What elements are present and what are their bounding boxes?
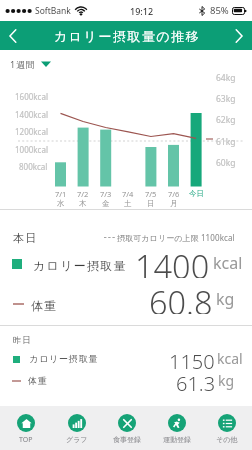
staticText: グラフ bbox=[66, 435, 88, 444]
staticText: 60kg bbox=[216, 157, 236, 169]
staticText: 摂取可カロリーの上限 1100kcal bbox=[117, 232, 235, 243]
staticText: 体重 bbox=[31, 298, 58, 313]
staticText: 本日 bbox=[13, 231, 38, 245]
staticText: 1150 bbox=[169, 348, 215, 370]
staticText: 金 bbox=[102, 199, 110, 208]
staticText: kg bbox=[218, 371, 235, 390]
staticText: 1600kcal bbox=[15, 91, 48, 102]
staticText: TOP bbox=[19, 435, 33, 445]
staticText: SoftBank bbox=[35, 5, 71, 17]
staticText: 7/4 bbox=[122, 189, 134, 199]
staticText: 運動登録 bbox=[163, 435, 191, 444]
staticText: 7/2 bbox=[77, 189, 89, 199]
staticText: 体重 bbox=[28, 375, 48, 386]
staticText: 1400 bbox=[135, 244, 210, 278]
staticText: 64kg bbox=[216, 72, 236, 84]
button[interactable]: TOP bbox=[0, 406, 51, 450]
staticText: 1000kcal bbox=[15, 144, 48, 155]
staticText: 1400kcal bbox=[15, 109, 48, 120]
staticText: 食事登録 bbox=[113, 435, 141, 444]
staticText: 今日 bbox=[189, 189, 204, 198]
staticText: 63kg bbox=[216, 93, 236, 105]
staticText: 1週間 bbox=[10, 58, 36, 70]
staticText: カロリー摂取量 bbox=[29, 353, 99, 364]
staticText: 85% bbox=[210, 4, 229, 17]
button[interactable]: 運動登録 bbox=[152, 406, 202, 450]
staticText: 月 bbox=[170, 199, 178, 208]
staticText: 19:12 bbox=[130, 5, 154, 17]
staticText: カロリー摂取量の推移 bbox=[54, 28, 201, 44]
staticText: 60.8 bbox=[149, 280, 213, 314]
staticText: 1200kcal bbox=[15, 126, 48, 137]
staticText: 木 bbox=[79, 199, 87, 208]
staticText: 土 bbox=[124, 199, 132, 208]
button[interactable]: 1週間 bbox=[10, 56, 51, 72]
staticText: カロリー摂取量 bbox=[33, 258, 127, 273]
staticText: 7/6 bbox=[168, 189, 180, 199]
staticText: 61.3 bbox=[176, 370, 216, 392]
staticText: その他 bbox=[216, 435, 238, 444]
staticText: kcal bbox=[217, 349, 243, 368]
staticText: 7/5 bbox=[145, 189, 157, 199]
staticText: 62kg bbox=[216, 114, 236, 126]
staticText: 昨日 bbox=[13, 335, 32, 346]
button[interactable]: 食事登録 bbox=[102, 406, 152, 450]
staticText: 水 bbox=[57, 199, 65, 208]
button[interactable]: その他 bbox=[202, 406, 252, 450]
staticText: 61kg bbox=[216, 136, 236, 148]
staticText: 7/1 bbox=[55, 189, 67, 199]
button[interactable]: Back bbox=[0, 21, 26, 50]
staticText: 800kcal bbox=[19, 161, 48, 172]
staticText: 日 bbox=[147, 199, 155, 208]
staticText: 7/3 bbox=[100, 189, 112, 199]
button[interactable]: Forward bbox=[226, 21, 252, 50]
button[interactable]: グラフ bbox=[51, 406, 102, 450]
staticText: kg bbox=[216, 288, 235, 310]
staticText: kcal bbox=[213, 252, 243, 274]
